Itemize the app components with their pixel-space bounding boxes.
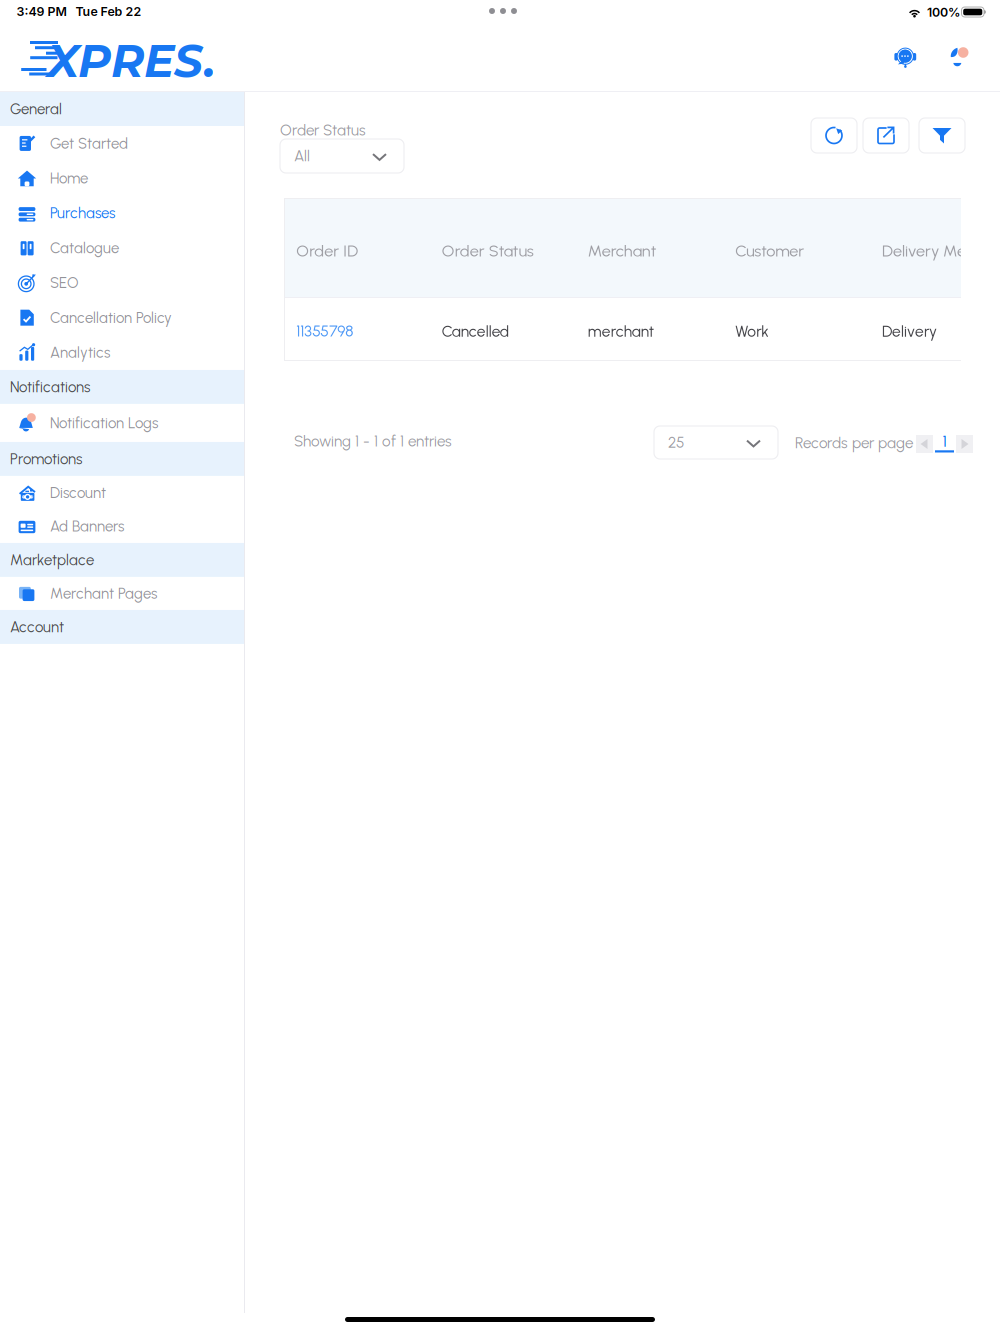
staticText: 100% bbox=[927, 5, 960, 20]
button[interactable]: All bbox=[280, 139, 404, 173]
button[interactable]: 1 bbox=[935, 433, 954, 452]
staticText: Promotions bbox=[10, 450, 82, 468]
staticText: XPRES. bbox=[47, 33, 216, 88]
staticText: Cancelled bbox=[442, 322, 509, 341]
staticText: Get Started bbox=[50, 134, 128, 152]
staticText: Home bbox=[50, 169, 88, 187]
staticText: Delivery Method bbox=[882, 241, 1000, 260]
button[interactable]: Home bbox=[0, 161, 244, 196]
staticText: Account bbox=[10, 618, 64, 636]
staticText: Ad Banners bbox=[50, 517, 124, 535]
staticText: 3:49 PM bbox=[17, 4, 67, 19]
staticText: Cancellation Policy bbox=[50, 309, 172, 327]
staticText: Work bbox=[735, 322, 769, 341]
staticText: Tue Feb 22 bbox=[76, 4, 142, 19]
staticText: Analytics bbox=[50, 344, 110, 361]
button[interactable]: XPRES home bbox=[18, 36, 223, 78]
staticText: merchant bbox=[588, 322, 654, 341]
button[interactable]: Merchant Pages bbox=[0, 577, 244, 610]
button[interactable]: Support bbox=[892, 45, 918, 69]
staticText: Order Status bbox=[280, 121, 366, 139]
staticText: 25 bbox=[668, 433, 684, 452]
button[interactable]: SEO bbox=[0, 265, 244, 300]
staticText: Delivery bbox=[882, 322, 937, 341]
staticText: Customer bbox=[735, 241, 804, 260]
button[interactable]: Refresh bbox=[811, 118, 857, 153]
button[interactable]: Ad Banners bbox=[0, 509, 244, 543]
button[interactable]: Previous page bbox=[916, 435, 933, 453]
staticText: General bbox=[10, 100, 62, 118]
button[interactable]: 11355798 bbox=[296, 320, 376, 342]
staticText: Discount bbox=[50, 484, 106, 502]
button[interactable]: Cancellation Policy bbox=[0, 300, 244, 335]
button[interactable]: Account bbox=[946, 44, 968, 66]
button[interactable]: Purchases bbox=[0, 196, 244, 231]
staticText bbox=[67, 4, 76, 19]
staticText: Order ID bbox=[296, 241, 358, 260]
staticText: Catalogue bbox=[50, 239, 119, 257]
staticText: Marketplace bbox=[10, 551, 94, 569]
staticText: Notifications bbox=[10, 378, 90, 396]
staticText: Purchases bbox=[50, 204, 115, 222]
staticText: Merchant bbox=[588, 241, 657, 260]
button[interactable]: Filter bbox=[919, 118, 965, 153]
staticText: Merchant Pages bbox=[50, 584, 157, 602]
staticText: 1 bbox=[942, 432, 946, 450]
staticText: Notification Logs bbox=[50, 414, 158, 432]
staticText: Records per page bbox=[795, 434, 913, 452]
button[interactable]: 25 bbox=[654, 426, 778, 459]
staticText: SEO bbox=[50, 274, 78, 292]
button[interactable]: Get Started bbox=[0, 126, 244, 161]
button[interactable]: Export bbox=[863, 118, 909, 153]
staticText: All bbox=[294, 147, 310, 165]
button[interactable]: Analytics bbox=[0, 335, 244, 370]
staticText: Order Status bbox=[442, 241, 534, 260]
staticText: Showing 1 - 1 of 1 entries bbox=[294, 432, 452, 450]
button[interactable]: Catalogue bbox=[0, 230, 244, 265]
button[interactable]: Next page bbox=[956, 435, 973, 453]
button[interactable]: Notification Logs bbox=[0, 404, 244, 442]
button[interactable]: Discount bbox=[0, 476, 244, 509]
staticText: 11355798 bbox=[296, 322, 353, 340]
